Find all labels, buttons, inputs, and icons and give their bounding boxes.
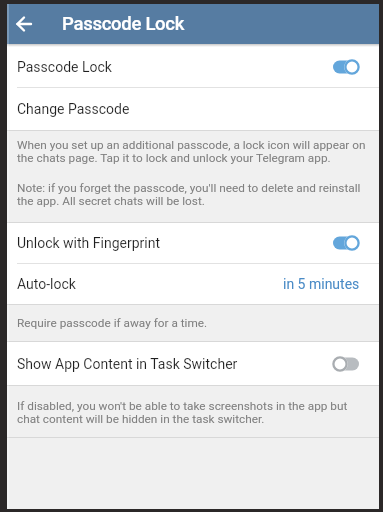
staticText: If disabled, you won't be able to take s… [17,399,348,426]
staticText: Show App Content in Task Switcher [17,356,238,372]
staticText: Passcode Lock [17,59,112,75]
button[interactable] [15,15,33,33]
staticText: Note: if you forget the passcode, you'll… [17,181,361,208]
button[interactable]: Passcode Lock [7,47,379,87]
button[interactable]: Unlock with Fingerprint [7,223,379,263]
staticText: Unlock with Fingerprint [17,235,161,251]
staticText: Change Passcode [17,101,130,117]
staticText: Require passcode if away for a time. [17,316,208,330]
staticText: in 5 minutes [283,276,360,292]
button[interactable]: Auto-lock [7,264,379,304]
button[interactable]: Change Passcode [7,88,379,130]
staticText: When you set up an additional passcode, … [17,138,366,165]
staticText: Passcode Lock [62,13,185,35]
button[interactable]: Show App Content in Task Switcher [7,342,379,385]
staticText: Auto-lock [17,276,76,292]
